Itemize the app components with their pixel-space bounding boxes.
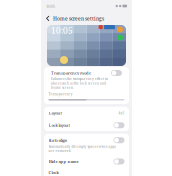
button[interactable]: Layout: [44, 107, 129, 119]
staticText: Clock: [48, 170, 58, 175]
staticText: Enhances the transparency effect in plac…: [51, 77, 108, 90]
staticText: 10:05: [51, 24, 73, 36]
button[interactable]: Back: [43, 12, 53, 25]
button[interactable]: Auto align: [44, 134, 129, 156]
staticText: Hide app name: [48, 159, 78, 164]
button[interactable]: Lock layout: [44, 119, 129, 131]
staticText: Automatically fill empty spaces when app…: [48, 144, 115, 153]
button[interactable]: Clock: [44, 167, 129, 176]
button[interactable]: Hide app name: [44, 156, 129, 167]
staticText: Layout: [48, 110, 61, 116]
staticText: Auto align: [48, 137, 67, 143]
staticText: 10:05: [46, 3, 55, 9]
staticText: Transparency: [48, 92, 72, 96]
button[interactable]: Transparency mode: [46, 67, 126, 92]
staticText: Lock layout: [48, 122, 69, 128]
staticText: Transparency mode: [51, 70, 91, 76]
staticText: Home screen settings: [53, 15, 104, 22]
staticText: 4x5: [118, 111, 124, 115]
